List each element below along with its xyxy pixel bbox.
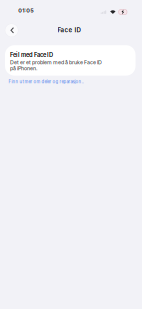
staticText: 01:05 bbox=[18, 7, 33, 14]
button[interactable]: Finn ut mer om deler og reparasjon... bbox=[0, 76, 142, 87]
staticText: Feil med Face ID bbox=[10, 51, 53, 58]
staticText: Face ID bbox=[57, 26, 80, 34]
button[interactable]: Back bbox=[4, 22, 20, 38]
staticText: Det er et problem med å bruke Face ID på… bbox=[10, 59, 102, 71]
staticText: Finn ut mer om deler og reparasjon... bbox=[8, 79, 84, 84]
